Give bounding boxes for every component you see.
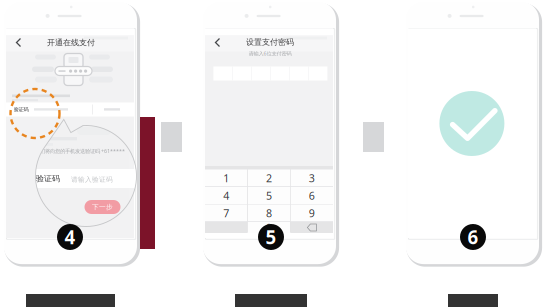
staticText: 1	[223, 171, 229, 185]
staticText: 下一步	[92, 203, 113, 211]
staticText: 验证码	[13, 106, 28, 113]
button[interactable]: 3	[291, 169, 333, 186]
staticText: 6	[309, 188, 315, 203]
button[interactable]: Back	[13, 37, 24, 48]
button[interactable]: Back	[212, 37, 223, 48]
staticText: 2	[266, 171, 272, 185]
button[interactable]: 1	[205, 169, 247, 186]
staticText: 9	[309, 206, 315, 220]
staticText: 6	[467, 225, 478, 249]
staticText: 5	[265, 225, 276, 249]
button[interactable]: 6	[291, 187, 333, 204]
button[interactable]: Delete	[291, 222, 333, 233]
button[interactable]: 7	[205, 204, 247, 221]
staticText: 我们将向您的手机发送验证码 +61*****	[35, 147, 125, 155]
staticText: 0	[266, 220, 272, 235]
staticText: 开通在线支付	[47, 38, 95, 47]
staticText: 7	[223, 206, 229, 220]
staticText: 验证码	[36, 174, 60, 183]
button[interactable]: 2	[248, 169, 290, 186]
staticText: 3	[309, 171, 315, 185]
staticText: 4	[223, 188, 229, 203]
button[interactable]: 4	[205, 187, 247, 204]
staticText: 5	[266, 188, 272, 203]
button[interactable]: 9	[291, 204, 333, 221]
staticText: 设置支付密码	[246, 37, 294, 47]
staticText: 4	[64, 225, 75, 249]
button[interactable]: 0	[248, 222, 290, 233]
staticText: 请输入验证码	[71, 175, 113, 184]
button[interactable]: 8	[248, 204, 290, 221]
button[interactable]: 5	[248, 187, 290, 204]
staticText: 请输入6位支付密码	[248, 50, 291, 57]
staticText: 8	[266, 206, 272, 220]
